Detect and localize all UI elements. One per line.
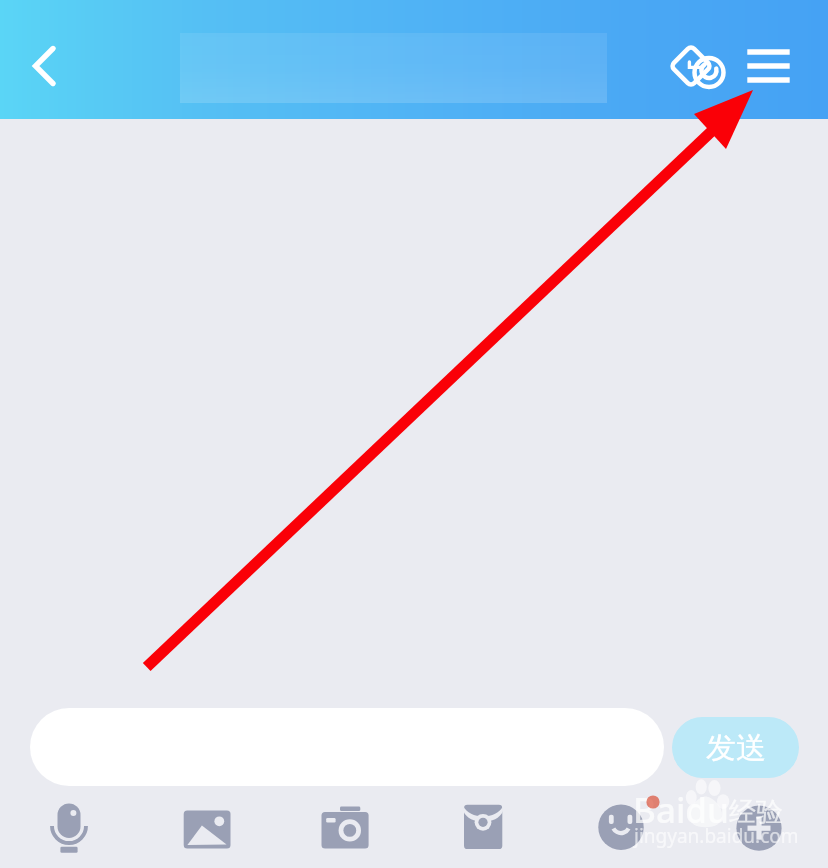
button[interactable]: Timed message bbox=[661, 33, 733, 105]
staticText: 发送 bbox=[706, 729, 766, 767]
button[interactable]: Album bbox=[167, 789, 247, 868]
button[interactable]: Message input bbox=[30, 708, 664, 786]
button[interactable]: 发送 bbox=[672, 717, 799, 778]
staticText: 经验 bbox=[729, 795, 783, 829]
button[interactable]: Camera bbox=[305, 789, 385, 868]
button[interactable]: Menu bbox=[733, 33, 805, 105]
button[interactable]: Emoji bbox=[581, 789, 661, 868]
button[interactable]: More bbox=[719, 789, 799, 868]
button[interactable]: Voice bbox=[29, 789, 109, 868]
button[interactable]: Red packet bbox=[443, 789, 523, 868]
staticText: jingyan.baidu.com bbox=[634, 823, 799, 849]
staticText: Baidu bbox=[633, 786, 730, 834]
button[interactable]: Back bbox=[2, 30, 74, 102]
